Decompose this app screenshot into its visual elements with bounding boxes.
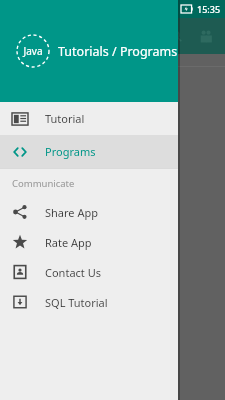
staticText: Communicate <box>12 177 75 190</box>
staticText: Tutorial <box>45 111 85 126</box>
button[interactable]: Share App <box>0 197 178 227</box>
staticText: 15:35 <box>197 3 221 15</box>
staticText: SQL Tutorial <box>45 295 108 310</box>
staticText: Programs <box>45 144 96 159</box>
button[interactable]: People <box>193 23 219 49</box>
button[interactable]: Tutorial <box>0 102 178 135</box>
staticText: Contact Us <box>45 265 101 280</box>
staticText: Share App <box>45 205 98 220</box>
button[interactable]: Rate App <box>0 227 178 257</box>
staticText: Java <box>16 44 50 58</box>
button[interactable]: SQL Tutorial <box>0 287 178 317</box>
staticText: Tutorials / Programs <box>58 43 178 60</box>
button[interactable]: Programs <box>0 135 178 168</box>
button[interactable]: Search <box>163 23 189 49</box>
staticText: Rate App <box>45 235 92 250</box>
button[interactable]: Contact Us <box>0 257 178 287</box>
